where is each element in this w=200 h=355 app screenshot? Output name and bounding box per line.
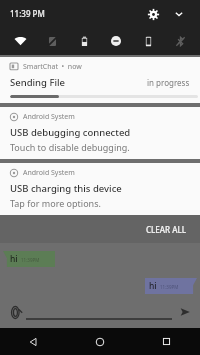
- staticText: in progress: [147, 77, 190, 88]
- staticText: hi: [149, 280, 157, 292]
- staticText: USB charging this device: [10, 182, 122, 195]
- button[interactable]: Android System: [0, 163, 200, 215]
- button[interactable]: Mobile data: [132, 27, 164, 55]
- button[interactable]: SmartChat • now: [0, 57, 200, 103]
- staticText: SmartChat • now: [23, 62, 82, 72]
- button[interactable]: Bluetooth off: [164, 27, 196, 55]
- staticText: 11:39PM: [160, 284, 179, 290]
- staticText: Android System: [23, 112, 75, 122]
- staticText: hi: [10, 253, 18, 265]
- button[interactable]: Wi-Fi: [4, 27, 36, 55]
- staticText: 11:39PM: [21, 257, 40, 263]
- button[interactable]: Auto rotate: [36, 27, 68, 55]
- staticText: Android System: [23, 168, 75, 178]
- button[interactable]: Back: [0, 328, 66, 355]
- staticText: Tap for more options.: [10, 197, 101, 209]
- button[interactable]: Attach: [4, 300, 28, 324]
- staticText: USB debugging connected: [10, 126, 131, 139]
- button[interactable]: Send: [173, 300, 197, 324]
- button[interactable]: Recent apps: [133, 328, 200, 355]
- staticText: Touch to disable debugging.: [10, 141, 130, 153]
- staticText: 11:39 PM: [10, 8, 45, 19]
- button[interactable]: Battery saver: [68, 27, 100, 55]
- button[interactable]: Android System: [0, 107, 200, 159]
- button[interactable]: Expand quick settings: [170, 5, 188, 23]
- staticText: CLEAR ALL: [146, 224, 186, 235]
- staticText: Sending File: [10, 76, 66, 89]
- button[interactable]: Home: [66, 328, 133, 355]
- button[interactable]: CLEAR ALL: [140, 220, 192, 239]
- button[interactable]: Do not disturb: [100, 27, 132, 55]
- button[interactable]: Settings: [144, 5, 162, 23]
